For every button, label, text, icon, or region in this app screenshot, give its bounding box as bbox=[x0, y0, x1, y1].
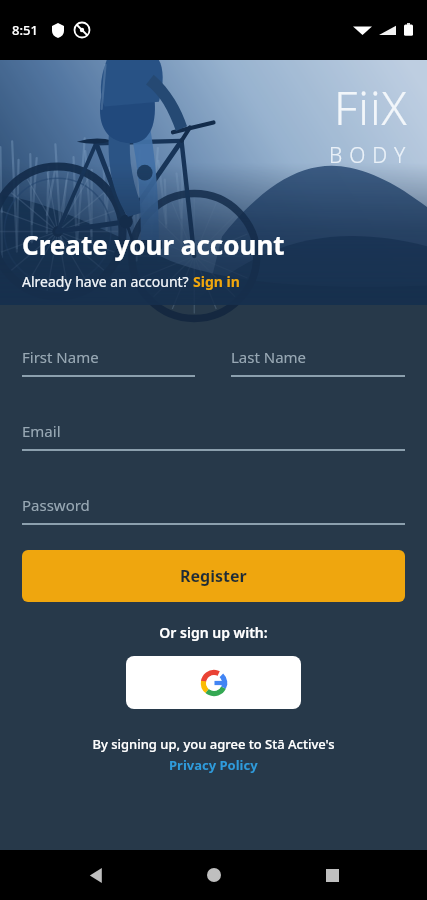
button[interactable]: Privacy Policy bbox=[169, 756, 258, 774]
staticText: Create your account bbox=[22, 227, 285, 262]
staticText: Email bbox=[22, 421, 61, 441]
staticText: BODY bbox=[329, 141, 413, 170]
staticText: Sign in bbox=[193, 272, 240, 291]
staticText: 8:51 bbox=[12, 21, 38, 39]
button[interactable]: Last Name bbox=[231, 347, 405, 377]
button[interactable]: Sign up with Google bbox=[126, 656, 301, 709]
staticText: Last Name bbox=[231, 347, 307, 367]
staticText: Password bbox=[22, 495, 90, 515]
staticText: By signing up, you agree to Stā Active's bbox=[22, 735, 405, 753]
button[interactable]: Password bbox=[22, 495, 405, 525]
staticText: Already have an account? bbox=[22, 272, 193, 291]
button[interactable]: Back bbox=[71, 851, 119, 899]
staticText: First Name bbox=[22, 347, 99, 367]
button[interactable]: Sign in bbox=[193, 272, 240, 291]
button[interactable]: Register bbox=[22, 550, 405, 602]
button[interactable]: Recent apps bbox=[308, 851, 356, 899]
button[interactable]: Email bbox=[22, 421, 405, 451]
button[interactable]: Home bbox=[190, 851, 238, 899]
button[interactable]: First Name bbox=[22, 347, 195, 377]
staticText: FiiX bbox=[334, 76, 408, 139]
staticText: Privacy Policy bbox=[169, 756, 258, 774]
staticText: Register bbox=[180, 565, 247, 587]
staticText: Or sign up with: bbox=[22, 623, 405, 642]
